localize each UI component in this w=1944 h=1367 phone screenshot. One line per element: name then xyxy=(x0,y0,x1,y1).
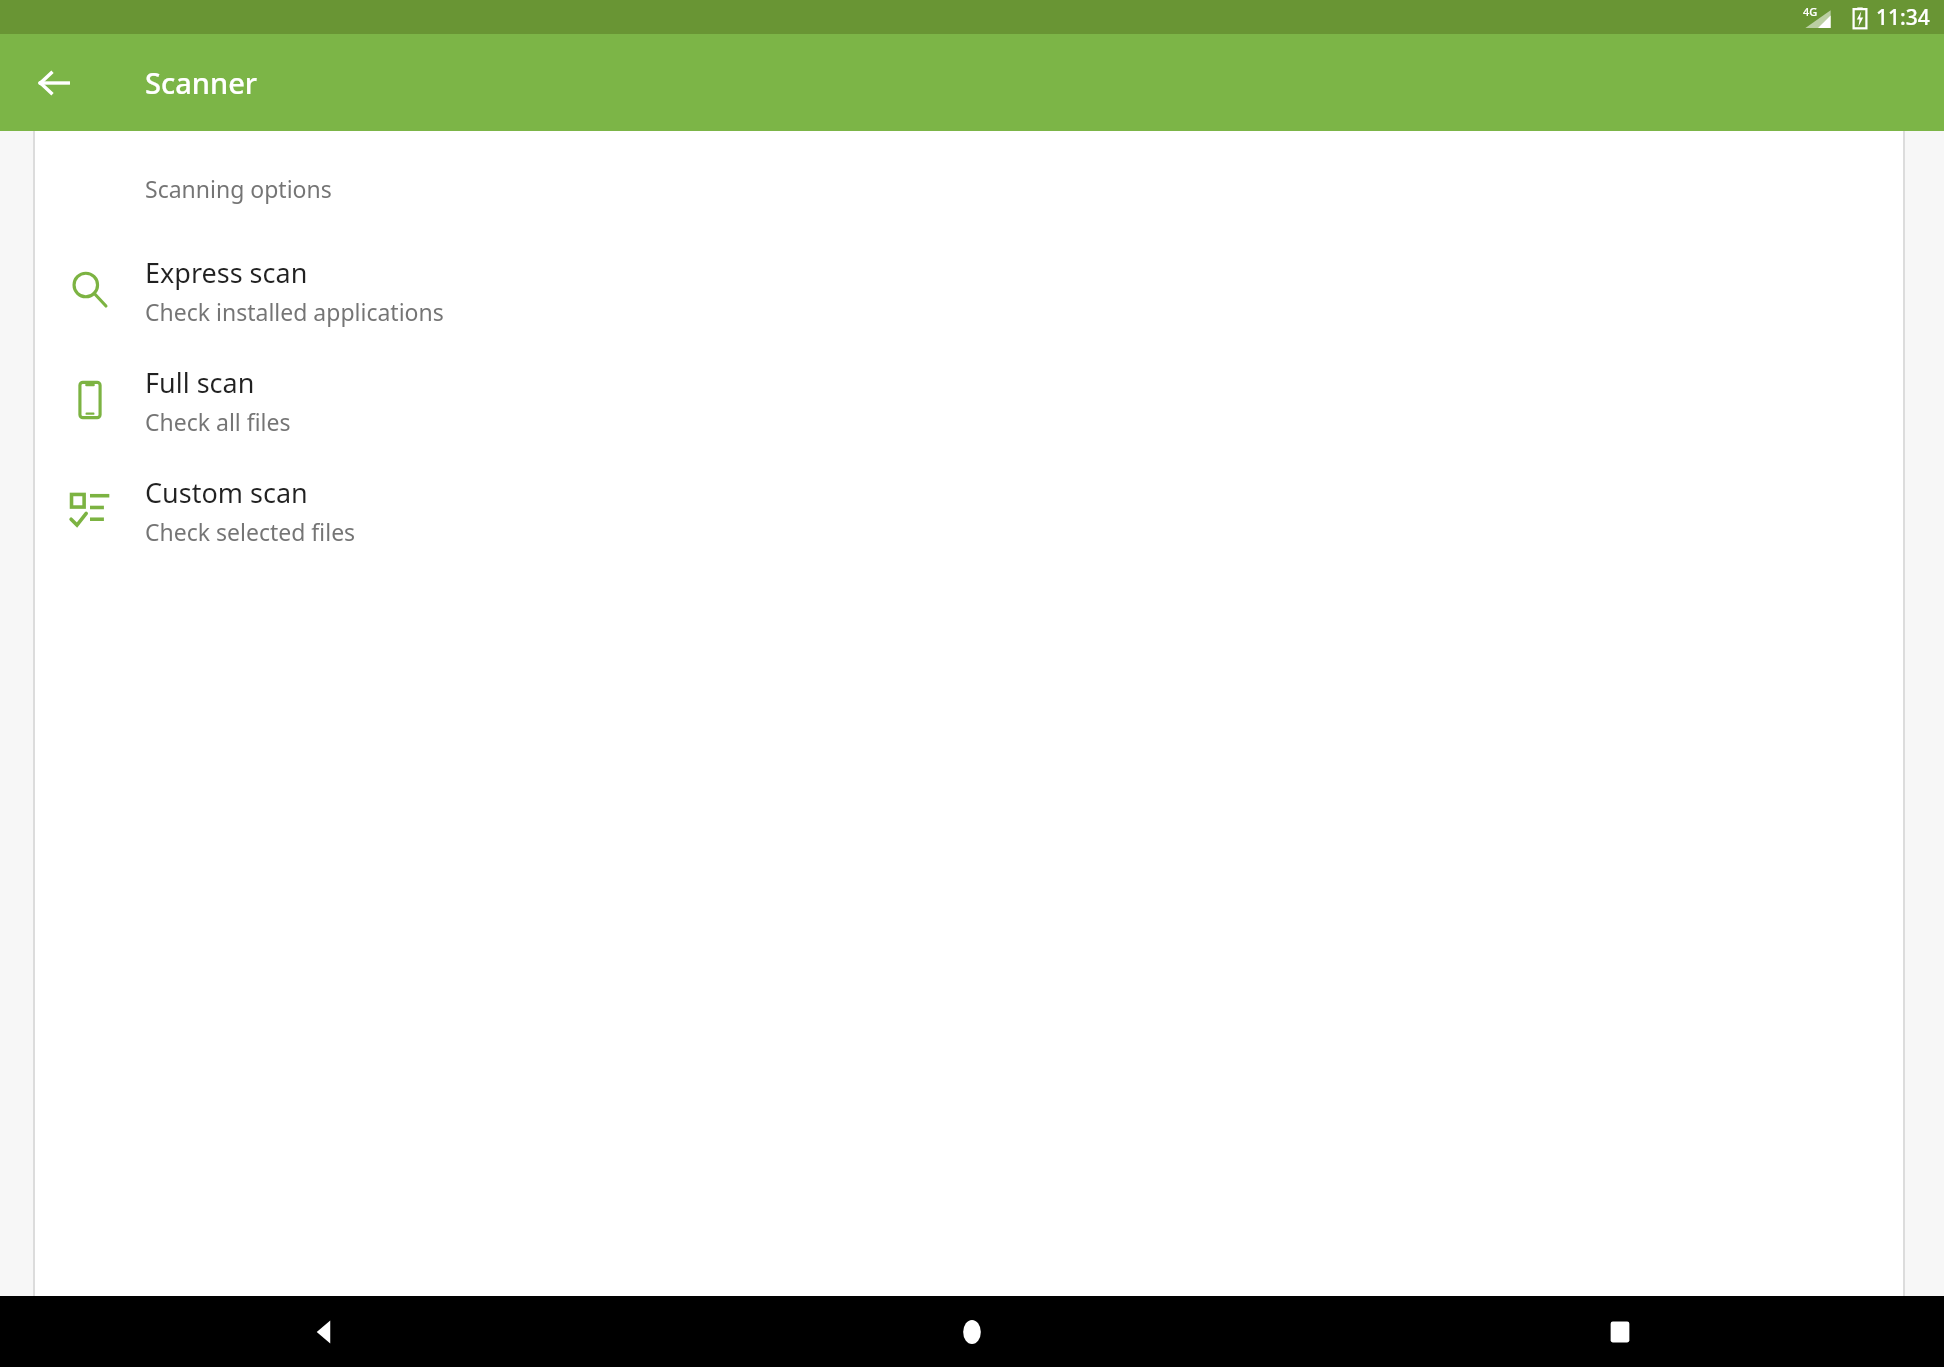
staticText: Scanning options xyxy=(145,173,332,204)
staticText: 4G xyxy=(1803,4,1818,19)
staticText: Express scan xyxy=(145,254,308,291)
staticText: Scanner xyxy=(145,63,258,102)
staticText: 11:34 xyxy=(1876,3,1930,32)
button[interactable]: Full scan xyxy=(35,345,1903,455)
button[interactable]: Express scan xyxy=(35,235,1903,345)
button[interactable]: Recent apps xyxy=(1296,1296,1944,1367)
staticText: Check all files xyxy=(145,406,291,437)
staticText: Full scan xyxy=(145,364,255,401)
staticText: Check selected files xyxy=(145,516,356,547)
staticText: Check installed applications xyxy=(145,296,444,327)
button[interactable]: Back xyxy=(0,1296,648,1367)
button[interactable]: Home xyxy=(648,1296,1296,1367)
staticText: Custom scan xyxy=(145,474,308,511)
button[interactable]: Back xyxy=(18,47,90,119)
button[interactable]: Custom scan xyxy=(35,455,1903,565)
